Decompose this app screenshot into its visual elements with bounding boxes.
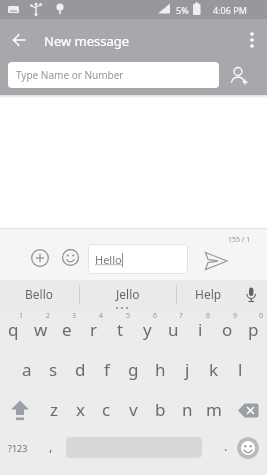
button[interactable]: Hello [88,244,188,274]
button[interactable]: n [174,396,201,422]
button[interactable]: i [187,316,214,342]
button[interactable]: . [215,434,237,458]
staticText: v [129,398,138,421]
button[interactable]: b [147,396,174,422]
button[interactable] [29,247,50,268]
staticText: w [34,318,48,341]
button[interactable] [239,282,263,308]
button[interactable] [61,248,80,267]
staticText: r [90,318,98,341]
button[interactable]: h [147,356,174,382]
button[interactable]: Jello [80,280,176,308]
button[interactable]: l [227,356,254,382]
staticText: Help [195,286,222,302]
staticText: Bello [25,286,54,302]
staticText: p [248,318,259,341]
staticText: 2 [46,311,51,321]
button[interactable]: Bello [0,280,79,308]
button[interactable]: t [107,316,134,342]
staticText: i [198,318,203,341]
button[interactable]: m [200,396,227,422]
staticText: 8 [206,311,211,321]
button[interactable]: Type Name or Number [8,62,219,88]
staticText: j [185,358,190,381]
button[interactable]: u [160,316,187,342]
button[interactable] [4,398,36,422]
button[interactable]: d [67,356,94,382]
staticText: c [102,398,111,421]
button[interactable]: e [53,316,80,342]
staticText: g [128,358,139,381]
staticText: u [168,318,179,341]
staticText: 6 [153,311,158,321]
button[interactable] [232,398,264,422]
button[interactable]: g [120,356,147,382]
button[interactable]: f [93,356,120,382]
staticText: 5 [126,311,131,321]
staticText: Type Name or Number [16,68,124,82]
button[interactable]: Help [177,280,239,308]
staticText: a [22,358,32,381]
staticText: Hello [95,252,122,267]
staticText: . [224,437,228,455]
staticText: , [49,437,53,455]
staticText: 0 [259,311,264,321]
button[interactable]: c [93,396,120,422]
staticText: x [76,398,85,421]
button[interactable]: q [0,316,27,342]
button[interactable]: ?123 [2,436,34,460]
staticText: 4:06 PM [213,4,247,16]
button[interactable] [236,436,260,460]
button[interactable]: , [40,434,62,458]
button[interactable]: j [174,356,201,382]
button[interactable]: k [200,356,227,382]
staticText: Jello [116,286,140,302]
button[interactable]: p [240,316,267,342]
staticText: y [143,318,152,341]
button[interactable] [200,246,232,276]
staticText: 7 [179,311,184,321]
button[interactable]: x [67,396,94,422]
button[interactable]: s [40,356,67,382]
staticText: z [50,398,58,421]
staticText: k [209,358,219,381]
staticText: e [62,318,72,341]
button[interactable]: a [13,356,40,382]
button[interactable]: z [40,396,67,422]
staticText: t [117,318,124,341]
button[interactable]: v [120,396,147,422]
staticText: m [206,398,222,421]
staticText: ?123 [8,442,28,454]
staticText: h [155,358,166,381]
staticText: 155 / 1 [228,235,251,245]
staticText: b [155,398,166,421]
button[interactable]: y [134,316,161,342]
staticText: 4 [99,311,104,321]
staticText: f [104,358,110,381]
staticText: o [222,318,233,341]
staticText: d [75,358,86,381]
staticText: 9 [233,311,238,321]
button[interactable] [224,62,254,90]
staticText: s [49,358,58,381]
staticText: New message [44,32,130,50]
button[interactable] [5,26,33,54]
staticText: 5% [176,4,189,16]
staticText: 1 [19,311,24,321]
button[interactable]: w [27,316,54,342]
staticText: l [238,358,243,381]
staticText: n [182,398,193,421]
staticText: q [8,318,19,341]
button[interactable]: r [80,316,107,342]
button[interactable] [238,26,266,54]
staticText: 3 [72,311,77,321]
button[interactable]: o [214,316,241,342]
